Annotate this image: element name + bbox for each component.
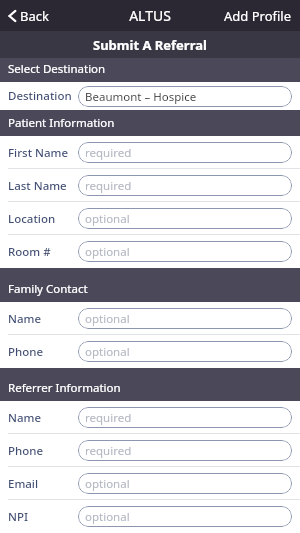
- staticText: Name: [8, 311, 41, 327]
- staticText: Last Name: [8, 178, 67, 194]
- button[interactable]: First Name: [0, 136, 300, 169]
- staticText: optional: [85, 344, 130, 360]
- staticText: ALTUS: [129, 6, 171, 25]
- staticText: Destination: [8, 88, 72, 104]
- button[interactable]: Name: [0, 302, 300, 335]
- staticText: Select Destination: [8, 61, 106, 77]
- staticText: required: [85, 145, 132, 161]
- button[interactable]: Phone: [0, 335, 300, 368]
- staticText: Email: [8, 476, 39, 492]
- staticText: Submit A Referral: [93, 36, 207, 54]
- button[interactable]: Phone: [0, 434, 300, 467]
- staticText: required: [85, 443, 132, 459]
- staticText: Name: [8, 410, 41, 426]
- staticText: optional: [85, 244, 130, 260]
- staticText: Family Contact: [8, 281, 88, 297]
- button[interactable]: NPI: [0, 500, 300, 533]
- button[interactable]: Add Profile: [216, 3, 300, 29]
- staticText: Back: [20, 7, 49, 25]
- button[interactable]: Last Name: [0, 169, 300, 202]
- button[interactable]: Destination: [0, 82, 300, 110]
- staticText: optional: [85, 476, 130, 492]
- button[interactable]: Name: [0, 401, 300, 434]
- staticText: Phone: [8, 443, 44, 459]
- staticText: required: [85, 410, 132, 426]
- staticText: Phone: [8, 344, 44, 360]
- staticText: Patient Information: [8, 115, 115, 131]
- staticText: Location: [8, 211, 56, 227]
- staticText: Referrer Information: [8, 380, 121, 396]
- staticText: Room #: [8, 244, 51, 260]
- staticText: required: [85, 178, 132, 194]
- staticText: optional: [85, 311, 130, 327]
- button[interactable]: Room #: [0, 235, 300, 268]
- staticText: Beaumont – Hospice: [85, 89, 197, 105]
- staticText: NPI: [8, 509, 29, 525]
- button[interactable]: Back: [0, 3, 57, 29]
- button[interactable]: Email: [0, 467, 300, 500]
- button[interactable]: Location: [0, 202, 300, 235]
- staticText: First Name: [8, 145, 69, 161]
- staticText: optional: [85, 509, 130, 525]
- staticText: optional: [85, 211, 130, 227]
